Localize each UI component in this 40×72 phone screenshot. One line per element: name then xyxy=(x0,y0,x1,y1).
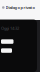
staticText: Dialogo privato xyxy=(6,5,35,10)
staticText: Oggi 14:32 xyxy=(1,25,19,31)
button[interactable]: Dialogo privato xyxy=(0,0,40,9)
